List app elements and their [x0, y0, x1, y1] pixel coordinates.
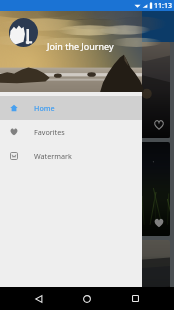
staticText: Favorites [34, 127, 65, 137]
button[interactable]: Favorite [4, 240, 170, 310]
staticText: Join the Journey [47, 40, 114, 52]
button[interactable]: Recent apps [123, 287, 147, 310]
button[interactable]: Favorite [4, 142, 170, 236]
button[interactable]: Favorite [153, 119, 165, 131]
button[interactable]: Favorite [4, 42, 170, 138]
button[interactable]: Favorites [0, 120, 142, 144]
staticText: Watermark [34, 151, 72, 161]
button[interactable]: Favorite [153, 217, 165, 229]
staticText: Journey [32, 20, 67, 33]
button[interactable]: Open navigation drawer [7, 19, 23, 35]
button[interactable]: Home [0, 96, 142, 120]
button[interactable]: Back [27, 287, 51, 310]
staticText: 11:13 [154, 1, 172, 11]
staticText: Home [34, 103, 55, 113]
button[interactable]: Home [75, 287, 99, 310]
button[interactable]: Watermark [0, 144, 142, 168]
